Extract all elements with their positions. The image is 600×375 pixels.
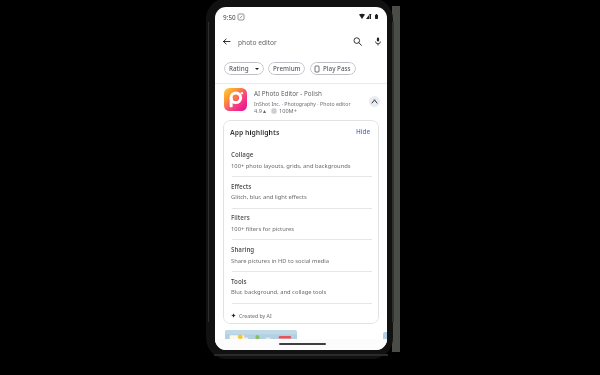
- staticText: Effects: [231, 182, 252, 190]
- staticText: Filters: [231, 213, 250, 221]
- staticText: App highlights: [230, 128, 280, 137]
- staticText: Premium: [273, 64, 301, 73]
- staticText: Collage: [231, 150, 254, 158]
- staticText: photo editor: [238, 38, 277, 47]
- staticText: Play Pass: [323, 64, 351, 73]
- staticText: InShot Inc. · Photography · Photo editor: [254, 100, 351, 107]
- staticText: 100+ filters for pictures: [231, 225, 295, 233]
- staticText: Hide: [356, 127, 371, 136]
- staticText: 100+ photo layouts, grids, and backgroun…: [231, 162, 351, 170]
- button[interactable]: Hide: [351, 125, 375, 138]
- staticText: 100M+: [279, 107, 297, 115]
- button[interactable]: Premium: [268, 62, 305, 75]
- button[interactable]: Play Pass: [310, 62, 356, 75]
- staticText: Share pictures in HD to social media: [231, 257, 329, 265]
- staticText: Created by AI: [239, 312, 272, 319]
- button[interactable]: Search: [348, 32, 367, 51]
- button[interactable]: Collapse: [369, 96, 380, 107]
- staticText: 9:50: [223, 13, 236, 22]
- button[interactable]: Rating: [224, 62, 264, 75]
- staticText: Tools: [231, 277, 247, 285]
- button[interactable]: Screenshot: [383, 332, 387, 348]
- button[interactable]: Back: [217, 32, 236, 51]
- staticText: Glitch, blur, and light effects: [231, 193, 307, 201]
- button[interactable]: [217, 83, 385, 117]
- staticText: Sharing: [231, 245, 255, 253]
- button[interactable]: Voice search: [368, 32, 387, 51]
- staticText: Rating: [229, 64, 249, 73]
- button[interactable]: Screenshot: [225, 330, 297, 349]
- staticText: 4.9: [254, 107, 262, 115]
- staticText: AI Photo Editor - Polish: [254, 89, 322, 98]
- staticText: Blur, background, and collage tools: [231, 288, 327, 296]
